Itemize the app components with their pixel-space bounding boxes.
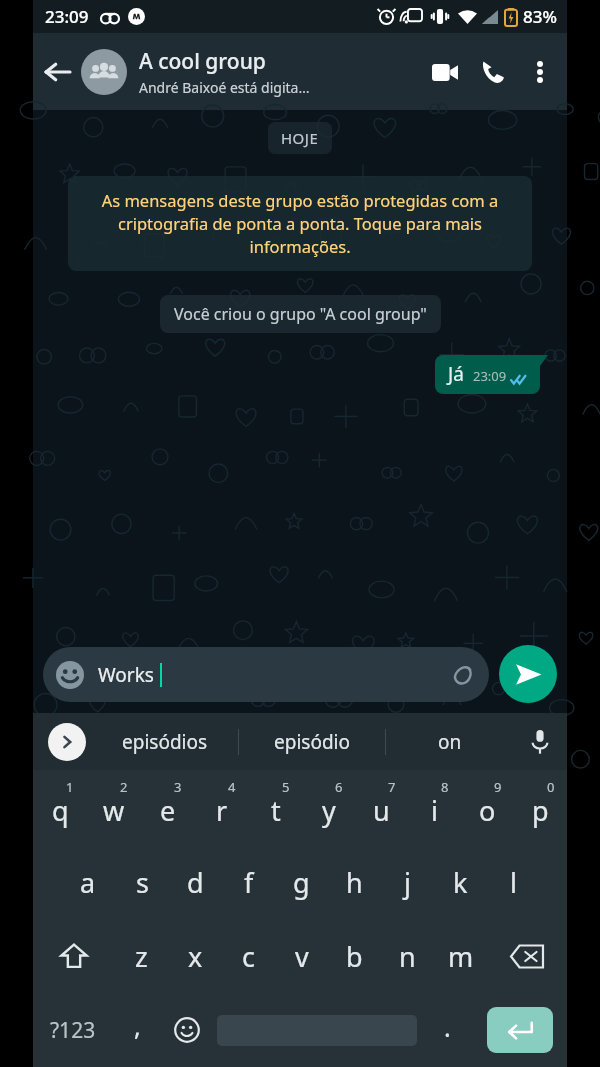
button[interactable]: Emoji bbox=[43, 647, 489, 702]
staticText: episódios bbox=[122, 729, 208, 755]
staticText: y bbox=[322, 792, 336, 829]
button[interactable]: 0 bbox=[514, 770, 567, 845]
button[interactable]: More suggestions bbox=[48, 723, 86, 761]
button[interactable]: c bbox=[222, 919, 275, 993]
staticText: b bbox=[346, 938, 363, 975]
button[interactable]: As mensagens deste grupo estão protegida… bbox=[68, 176, 532, 271]
button[interactable]: n bbox=[381, 919, 434, 993]
button[interactable]: h bbox=[328, 845, 381, 919]
button[interactable]: 4 bbox=[195, 770, 249, 845]
staticText: h bbox=[346, 864, 363, 901]
staticText: e bbox=[160, 792, 176, 829]
button[interactable]: . bbox=[422, 993, 472, 1067]
staticText: a bbox=[80, 864, 96, 901]
staticText: HOJE bbox=[281, 128, 319, 148]
other: Attach bbox=[450, 662, 476, 688]
staticText: o bbox=[479, 792, 496, 829]
staticText: q bbox=[52, 792, 69, 829]
button[interactable]: Emoji keyboard bbox=[162, 993, 212, 1067]
button[interactable]: , bbox=[112, 993, 162, 1067]
staticText: 9 bbox=[494, 778, 502, 796]
staticText: , bbox=[134, 1009, 141, 1043]
staticText: r bbox=[216, 792, 228, 829]
button[interactable]: l bbox=[487, 845, 540, 919]
staticText: m bbox=[448, 938, 474, 975]
button[interactable]: 3 bbox=[141, 770, 195, 845]
staticText: . bbox=[444, 1010, 451, 1044]
staticText: w bbox=[103, 792, 125, 829]
staticText: Works bbox=[98, 662, 154, 688]
button[interactable]: episódios bbox=[92, 729, 238, 755]
button[interactable]: Voice call bbox=[469, 48, 517, 96]
staticText: c bbox=[242, 938, 255, 975]
staticText: 23:09 bbox=[473, 367, 507, 385]
staticText: d bbox=[187, 864, 204, 901]
staticText: 2 bbox=[120, 778, 128, 796]
staticText: ?123 bbox=[50, 1016, 96, 1045]
staticText: As mensagens deste grupo estão protegida… bbox=[82, 189, 518, 258]
staticText: 0 bbox=[547, 778, 555, 796]
button[interactable]: Voice input bbox=[513, 713, 567, 770]
staticText: 4 bbox=[228, 778, 236, 796]
button[interactable]: Já bbox=[435, 355, 548, 394]
button[interactable]: 5 bbox=[249, 770, 302, 845]
button[interactable]: z bbox=[114, 919, 168, 993]
staticText: 7 bbox=[388, 778, 396, 796]
button[interactable]: v bbox=[275, 919, 328, 993]
button[interactable]: More options bbox=[517, 49, 563, 95]
staticText: x bbox=[188, 938, 203, 975]
staticText: v bbox=[295, 938, 309, 975]
button[interactable]: x bbox=[168, 919, 222, 993]
staticText: 23:09 bbox=[45, 5, 89, 28]
button[interactable]: Backspace bbox=[487, 919, 567, 993]
other: Emoji bbox=[56, 661, 84, 689]
staticText: 8 bbox=[441, 778, 449, 796]
button[interactable]: Shift bbox=[33, 919, 114, 993]
button[interactable]: f bbox=[222, 845, 275, 919]
button[interactable]: m bbox=[434, 919, 487, 993]
staticText: episódio bbox=[274, 729, 350, 755]
button[interactable]: s bbox=[115, 845, 169, 919]
button[interactable]: on bbox=[386, 729, 513, 755]
staticText: j bbox=[404, 864, 411, 901]
button[interactable]: Você criou o grupo "A cool group" bbox=[160, 295, 441, 333]
staticText: u bbox=[373, 792, 390, 829]
button[interactable]: A cool group bbox=[139, 47, 421, 97]
button[interactable]: Enter bbox=[472, 993, 567, 1067]
button[interactable]: Send bbox=[499, 645, 557, 703]
button[interactable]: b bbox=[328, 919, 381, 993]
staticText: n bbox=[399, 938, 416, 975]
staticText: 6 bbox=[335, 778, 343, 796]
staticText: f bbox=[244, 864, 254, 901]
staticText: 5 bbox=[282, 778, 290, 796]
button[interactable]: 7 bbox=[355, 770, 408, 845]
staticText: 3 bbox=[174, 778, 182, 796]
button[interactable]: 6 bbox=[302, 770, 355, 845]
button[interactable]: HOJE bbox=[268, 122, 332, 154]
staticText: p bbox=[532, 792, 549, 829]
button[interactable]: ?123 bbox=[33, 993, 112, 1067]
button[interactable]: 9 bbox=[461, 770, 514, 845]
staticText: k bbox=[453, 864, 468, 901]
staticText: Já bbox=[448, 361, 464, 387]
button[interactable]: d bbox=[169, 845, 222, 919]
button[interactable]: 8 bbox=[408, 770, 461, 845]
staticText: g bbox=[293, 864, 310, 901]
staticText: 1 bbox=[66, 778, 74, 796]
staticText: t bbox=[271, 792, 281, 829]
staticText: i bbox=[431, 792, 438, 829]
staticText: on bbox=[438, 729, 462, 755]
button[interactable]: 1 bbox=[33, 770, 87, 845]
button[interactable]: 2 bbox=[87, 770, 141, 845]
staticText: 83% bbox=[523, 5, 557, 28]
staticText: André Baixoé está digita… bbox=[139, 78, 310, 97]
staticText: Você criou o grupo "A cool group" bbox=[174, 303, 427, 325]
button[interactable]: Space bbox=[212, 993, 422, 1067]
button[interactable]: k bbox=[434, 845, 487, 919]
button[interactable]: j bbox=[381, 845, 434, 919]
button[interactable]: a bbox=[61, 845, 115, 919]
button[interactable]: episódio bbox=[239, 729, 385, 755]
button[interactable]: Video call bbox=[421, 48, 469, 96]
button[interactable]: Back bbox=[33, 48, 81, 96]
button[interactable]: g bbox=[275, 845, 328, 919]
